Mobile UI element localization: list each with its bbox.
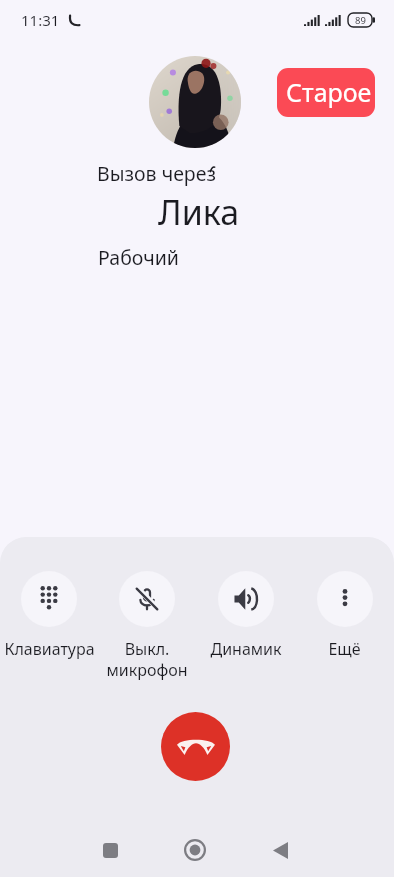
staticText: Динамик [210,638,282,660]
staticText: Вызов через [97,160,216,187]
staticText: Клавиатура [4,638,95,660]
staticText: Старое [286,75,372,109]
staticText: 89 [355,14,366,27]
button[interactable]: Ещё [295,571,394,660]
button[interactable]: Динамик [196,571,295,660]
button[interactable]: Старое [277,68,375,117]
staticText: 11:31 [21,10,60,30]
staticText: Ещё [328,638,361,660]
staticText: Лика [158,189,240,235]
button[interactable]: End call [161,712,230,781]
staticText: Рабочий [98,244,179,271]
staticText: Выкл. микрофон [106,638,188,681]
button[interactable]: Home [165,826,225,874]
button[interactable]: Recents [80,826,140,874]
button[interactable]: Клавиатура [0,571,98,660]
button[interactable]: Выкл. микрофон [98,571,196,681]
button[interactable]: Back [250,826,310,874]
